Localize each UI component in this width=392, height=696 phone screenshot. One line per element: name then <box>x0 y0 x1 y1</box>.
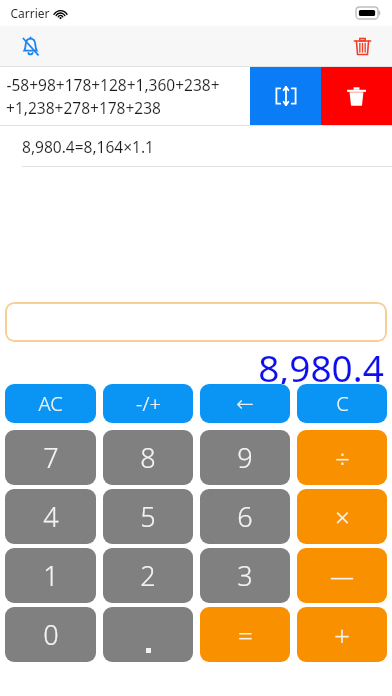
button[interactable]: Delete entry <box>321 67 392 125</box>
staticText: 6 <box>237 498 253 535</box>
staticText: 2 <box>140 557 156 594</box>
staticText: 8 <box>140 439 156 476</box>
staticText: C <box>336 390 349 417</box>
button[interactable] <box>103 607 193 662</box>
staticText: -/+ <box>136 390 161 417</box>
button[interactable]: + <box>297 607 387 662</box>
button[interactable]: 5 <box>103 489 193 544</box>
button[interactable]: AC <box>5 384 96 423</box>
button[interactable]: Clear history <box>342 26 382 66</box>
button[interactable]: Mute notifications <box>10 26 50 66</box>
staticText: — <box>330 559 354 592</box>
staticText: + <box>334 616 350 654</box>
staticText: ← <box>236 392 254 416</box>
staticText: -58+98+178+128+1,360+238+ <box>6 74 220 95</box>
button[interactable]: × <box>297 489 387 544</box>
button[interactable]: — <box>297 548 387 603</box>
staticText: 9 <box>237 439 253 476</box>
button[interactable]: -/+ <box>103 384 193 423</box>
button[interactable]: 2 <box>103 548 193 603</box>
staticText: 0 <box>43 616 59 653</box>
button[interactable]: 3 <box>200 548 290 603</box>
button[interactable] <box>5 302 387 342</box>
staticText: 5 <box>140 498 156 535</box>
button[interactable]: ← <box>200 384 290 423</box>
button[interactable]: Move entry <box>250 67 321 125</box>
button[interactable]: 4 <box>5 489 96 544</box>
button[interactable]: 6 <box>200 489 290 544</box>
staticText: 1 <box>43 557 59 594</box>
button[interactable]: = <box>200 607 290 662</box>
staticText: 8,980.4 <box>258 342 384 384</box>
staticText: Carrier <box>10 5 50 21</box>
staticText: +1,238+278+178+238 <box>6 97 161 118</box>
button[interactable]: 9 <box>200 430 290 485</box>
staticText: AC <box>38 390 63 417</box>
staticText: 3 <box>237 557 253 594</box>
staticText: ÷ <box>335 440 350 475</box>
button[interactable]: 0 <box>5 607 96 662</box>
staticText: × <box>335 499 350 534</box>
staticText: 8,980.4=8,164×1.1 <box>22 136 154 157</box>
button[interactable]: 8 <box>103 430 193 485</box>
staticText: 7 <box>43 439 59 476</box>
button[interactable]: 1 <box>5 548 96 603</box>
staticText: = <box>238 617 253 652</box>
staticText: 4 <box>43 498 59 535</box>
button[interactable]: 7 <box>5 430 96 485</box>
button[interactable]: ÷ <box>297 430 387 485</box>
button[interactable]: C <box>297 384 387 423</box>
